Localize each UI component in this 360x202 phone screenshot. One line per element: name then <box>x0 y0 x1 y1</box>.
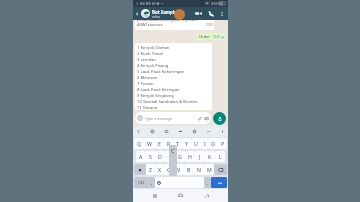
button[interactable]: S <box>145 151 155 162</box>
button[interactable]: W <box>144 138 154 149</box>
button[interactable]: Settings <box>192 129 197 134</box>
staticText: S <box>149 153 152 160</box>
button[interactable]: More options <box>218 10 225 17</box>
staticText: online <box>152 15 161 19</box>
button[interactable]: N <box>194 164 204 175</box>
staticText: Order <box>199 34 211 39</box>
button[interactable]: M <box>204 164 214 175</box>
button[interactable]: Voice input <box>220 129 225 134</box>
button[interactable]: Q <box>134 138 144 149</box>
button[interactable]: E <box>154 138 164 149</box>
button[interactable]: V <box>174 164 184 175</box>
button[interactable]: Video call <box>194 9 203 18</box>
staticText: 2 Kueh Travel <box>137 51 164 57</box>
staticText: X <box>158 166 162 173</box>
staticText: 8 Lauk Pauk Keringan <box>137 87 180 93</box>
staticText: G <box>178 153 182 160</box>
button[interactable]: B <box>184 164 194 175</box>
button[interactable]: Back <box>136 129 141 134</box>
button[interactable]: Emoji <box>135 112 211 124</box>
staticText: R <box>167 140 171 147</box>
button[interactable]: H <box>185 151 195 162</box>
staticText: Type a message <box>145 116 172 121</box>
button[interactable]: R <box>164 138 173 149</box>
staticText: W <box>147 140 152 147</box>
staticText: C <box>171 147 175 154</box>
staticText: H <box>188 153 192 160</box>
button[interactable]: , <box>148 177 155 188</box>
staticText: Q <box>137 140 142 147</box>
button[interactable]: Voice message <box>213 112 226 125</box>
staticText: ASW1xxxxxxx <box>137 22 163 27</box>
button[interactable]: C <box>164 164 174 175</box>
button[interactable]: P <box>218 138 227 149</box>
button[interactable]: T <box>173 138 182 149</box>
button[interactable]: K <box>205 151 215 162</box>
staticText: V <box>177 166 181 173</box>
button[interactable]: I <box>200 138 209 149</box>
staticText: 4 Keripik Pisang <box>137 63 169 69</box>
button[interactable]: Y <box>182 138 191 149</box>
staticText: L <box>219 153 222 160</box>
button[interactable]: Bot Sample <box>152 9 194 19</box>
staticText: 5 Lauk Pauk Kekeringan <box>137 69 185 75</box>
button[interactable]: Back <box>134 11 140 17</box>
button[interactable]: G <box>175 151 185 162</box>
button[interactable]: ?123 <box>134 177 148 188</box>
staticText: N <box>197 166 201 173</box>
button[interactable]: Emoji <box>155 177 163 188</box>
staticText: . <box>207 179 209 186</box>
button[interactable]: GIF <box>164 129 169 134</box>
button[interactable]: D <box>155 151 165 162</box>
button[interactable]: 1 Keripik Olahan <box>135 43 212 110</box>
staticText: Z <box>149 166 152 173</box>
staticText: J <box>199 153 201 160</box>
staticText: 11 Kacang <box>137 105 158 109</box>
staticText: B <box>187 166 191 173</box>
staticText: , <box>151 179 153 186</box>
button[interactable]: Back <box>202 191 211 200</box>
button[interactable]: . <box>204 177 211 188</box>
staticText: ?123 <box>138 181 145 185</box>
staticText: 1 Keripik Olahan <box>137 45 170 51</box>
button[interactable]: A <box>136 151 145 162</box>
staticText: 10 Sambal Sambalan & Bumbu <box>137 99 198 105</box>
button[interactable]: O <box>209 138 218 149</box>
staticText: 9 Keripik Singkong <box>137 93 174 99</box>
button[interactable]: More <box>206 129 211 134</box>
button[interactable]: Home <box>176 191 185 200</box>
button[interactable]: Z <box>146 164 155 175</box>
staticText: K <box>208 153 212 160</box>
staticText: M <box>207 166 212 173</box>
button[interactable] <box>141 9 150 18</box>
button[interactable]: Recents <box>150 191 159 200</box>
button[interactable]: Translate <box>178 129 183 134</box>
staticText: 7 Frozen <box>137 81 154 87</box>
staticText: 3 cemilan <box>137 57 156 63</box>
button[interactable]: X <box>155 164 164 175</box>
button[interactable]: pesan anda sedang kami proses <box>135 20 214 30</box>
button[interactable]: Order <box>197 33 226 40</box>
button[interactable]: Backspace <box>214 164 227 175</box>
staticText: T <box>176 140 179 147</box>
button[interactable]: J <box>195 151 205 162</box>
staticText: Y <box>185 140 188 147</box>
button[interactable]: Shift <box>134 164 146 175</box>
button[interactable]: Stickers <box>150 129 155 134</box>
button[interactable]: Call <box>206 9 215 18</box>
other: Emoji <box>137 115 143 121</box>
button[interactable]: L <box>215 151 225 162</box>
button[interactable]: F <box>165 151 175 162</box>
other: Attach <box>197 116 202 121</box>
staticText: C <box>167 166 171 173</box>
button[interactable]: Enter <box>211 177 227 188</box>
staticText: pesan anda sedang kami proses <box>137 20 198 22</box>
staticText: D <box>158 153 162 160</box>
staticText: I <box>204 140 206 147</box>
staticText: A <box>139 153 143 160</box>
button[interactable]: U <box>191 138 200 149</box>
other: Camera <box>204 116 209 121</box>
staticText: 22:30 <box>213 35 220 39</box>
